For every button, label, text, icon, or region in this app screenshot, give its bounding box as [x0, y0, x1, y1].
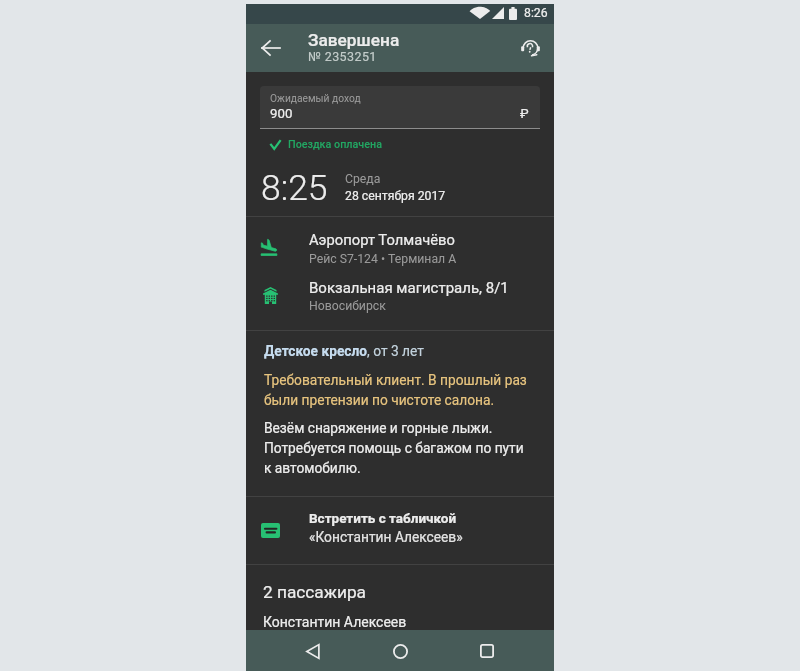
button[interactable] [246, 564, 554, 631]
staticText: Ожидаемый доход [270, 92, 361, 104]
staticText: Константин Алексеев [263, 614, 407, 630]
staticText: ₽ [520, 106, 529, 121]
staticText: 8:25 [261, 167, 328, 209]
button[interactable]: Support [510, 28, 550, 68]
staticText: 2 пассажира [263, 582, 366, 602]
staticText: Новосибирск [309, 299, 386, 313]
staticText: Требовательный клиент. В прошлый раз был… [264, 372, 532, 408]
staticText: Встретить с табличкой [309, 510, 457, 526]
staticText: № 2353251 [308, 49, 377, 64]
button[interactable] [246, 217, 554, 266]
staticText: 900 [270, 106, 293, 122]
staticText: 8:26 [524, 6, 548, 20]
button[interactable] [246, 496, 554, 563]
staticText: «Константин Алексеев» [309, 529, 463, 545]
staticText: Завершена [308, 30, 400, 50]
button[interactable] [260, 86, 540, 129]
staticText: Вокзальная магистраль, 8/1 [309, 279, 509, 297]
button[interactable]: Home [380, 631, 420, 671]
staticText: Везём снаряжение и горные лыжи. Потребуе… [264, 420, 532, 476]
staticText: Рейс S7-124 • Терминал А [309, 252, 457, 266]
button[interactable]: Back [293, 631, 333, 671]
staticText: Детское кресло, от 3 лет [264, 343, 424, 359]
staticText: 28 сентября 2017 [345, 189, 446, 203]
staticText: Аэропорт Толмачёво [309, 231, 455, 248]
button[interactable]: Back [251, 28, 291, 68]
staticText: Среда [345, 172, 381, 186]
button[interactable] [246, 266, 554, 315]
staticText: Поездка оплачена [288, 138, 383, 151]
button[interactable]: Recents [467, 631, 507, 671]
